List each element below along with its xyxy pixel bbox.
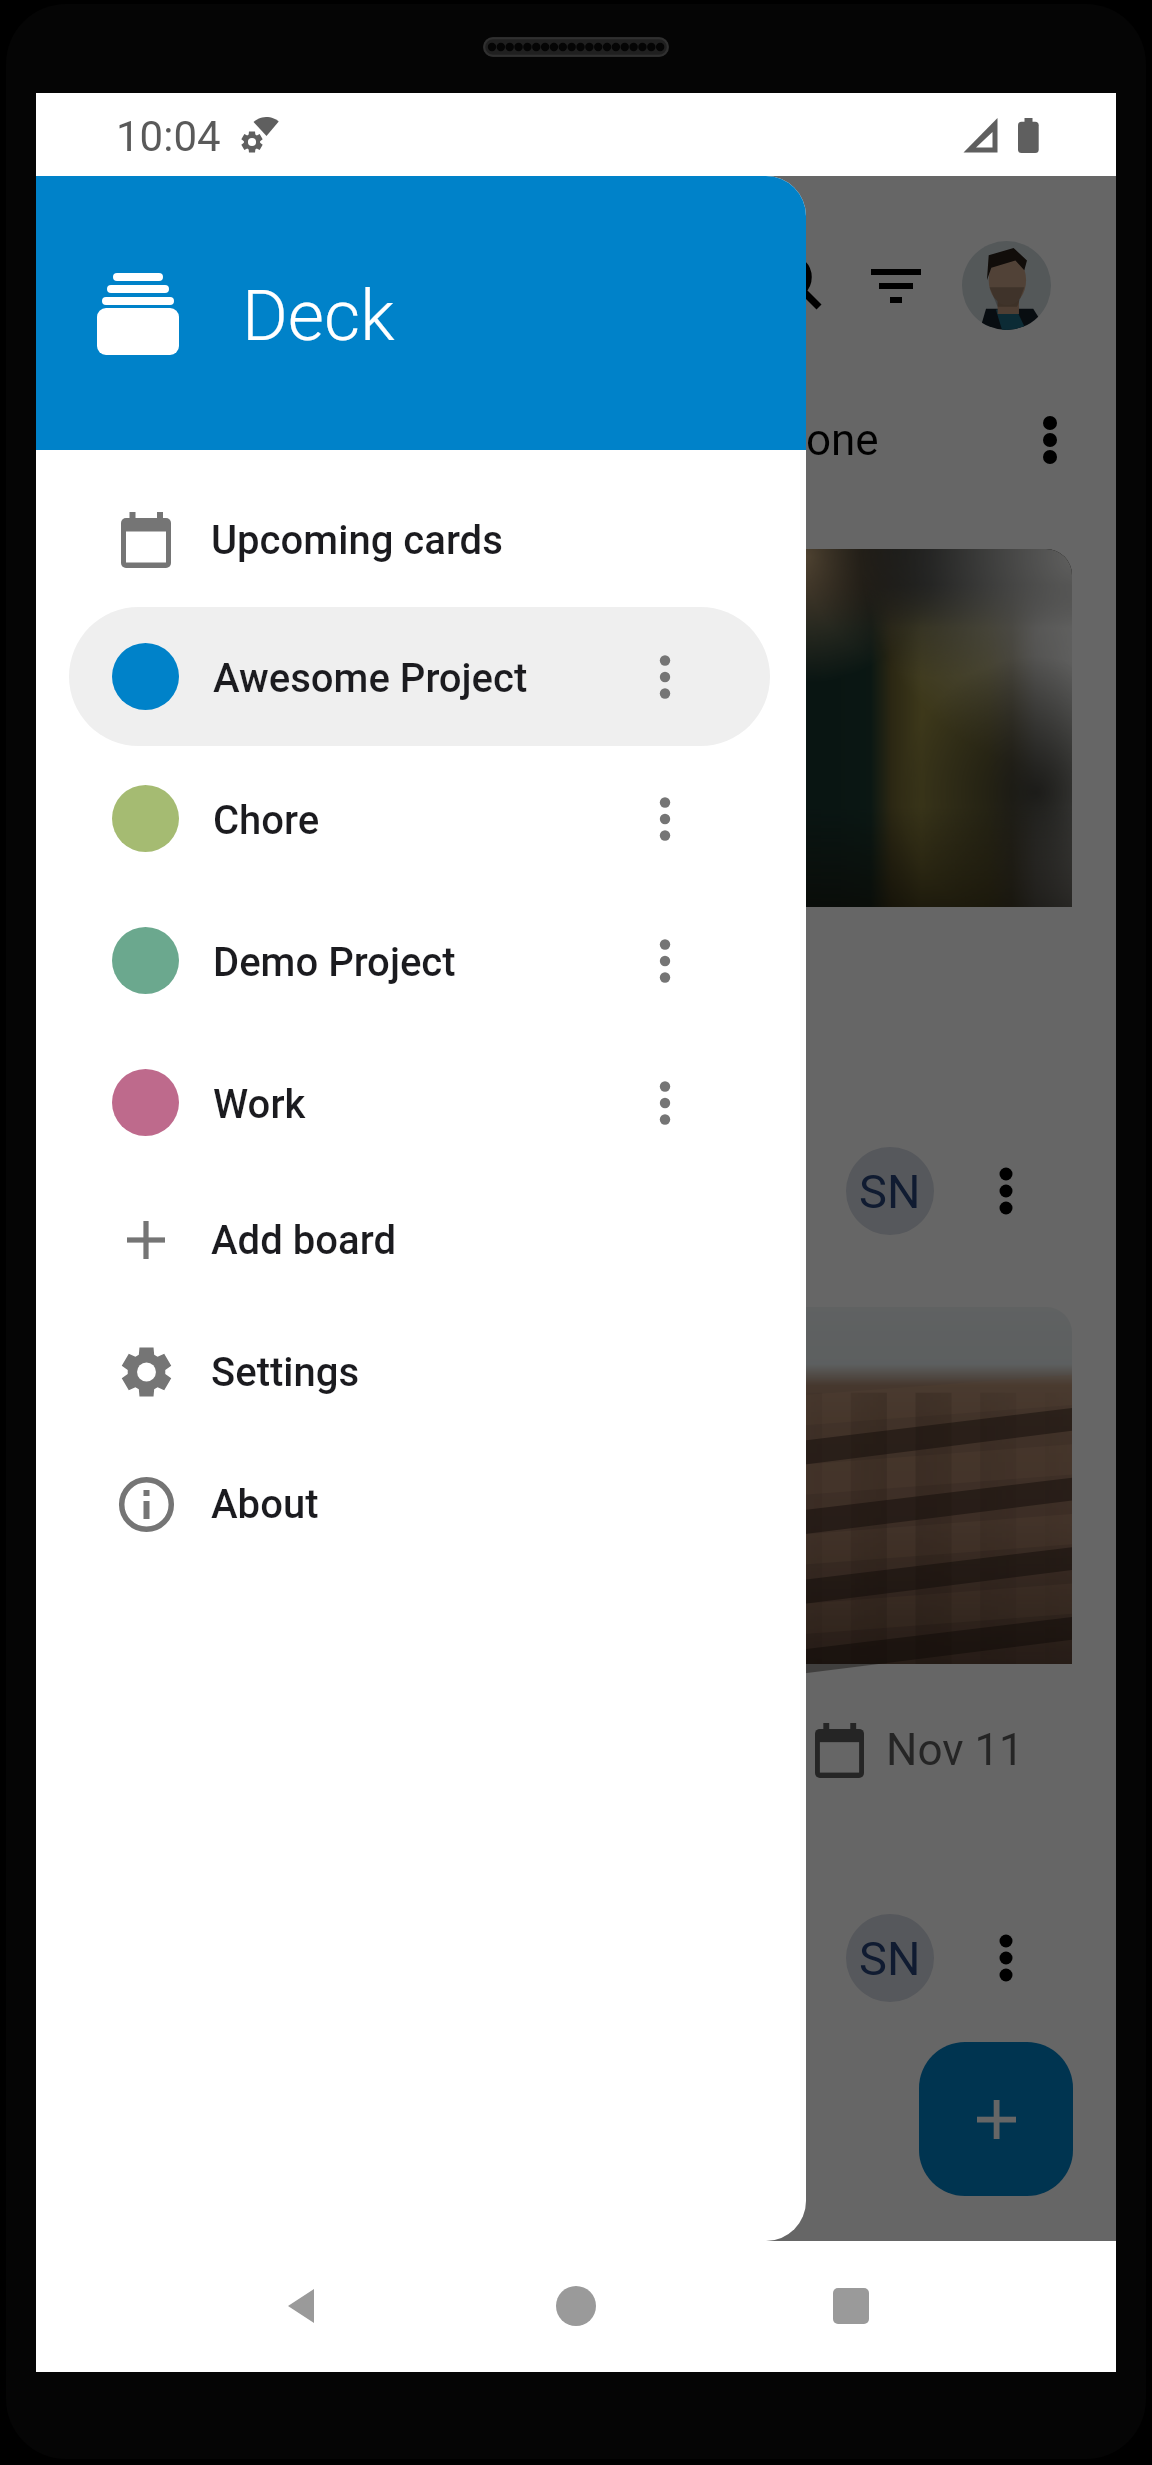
button[interactable]: Settings xyxy=(36,1306,806,1438)
staticText: Demo Project xyxy=(213,939,456,986)
button[interactable]: Back xyxy=(266,2271,336,2341)
staticText: Add board xyxy=(211,1217,397,1264)
button[interactable]: Chore xyxy=(69,749,770,888)
staticText: SN xyxy=(859,1164,921,1219)
staticText: Done xyxy=(777,414,879,466)
button[interactable]: SN xyxy=(771,549,1072,1261)
button[interactable]: Card options xyxy=(962,1914,1050,2002)
button[interactable]: Board options xyxy=(630,1033,770,1172)
staticText: Nov 11 xyxy=(886,1724,1024,1776)
staticText: SN xyxy=(859,1931,921,1986)
button[interactable]: Board options xyxy=(630,891,770,1030)
button[interactable]: Upcoming cards xyxy=(36,475,806,605)
button[interactable]: Board options xyxy=(630,607,770,746)
button[interactable]: Board options xyxy=(630,749,770,888)
button[interactable]: Done xyxy=(36,371,1116,481)
button[interactable]: Home xyxy=(541,2271,611,2341)
staticText: About xyxy=(211,1481,319,1528)
button[interactable]: Add board xyxy=(36,1174,806,1306)
button[interactable]: About xyxy=(36,1438,806,1570)
button[interactable]: Awesome Project xyxy=(69,607,770,746)
button[interactable]: Card options xyxy=(962,1147,1050,1235)
button[interactable]: Work xyxy=(69,1033,770,1172)
staticText: Work xyxy=(213,1081,306,1128)
button[interactable]: Stack options xyxy=(978,368,1122,478)
staticText: Upcoming cards xyxy=(211,517,503,564)
button[interactable]: Recent apps xyxy=(816,2271,886,2341)
button[interactable]: Filter xyxy=(824,217,968,361)
staticText: Chore xyxy=(213,797,320,844)
staticText: 10:04 xyxy=(116,112,221,161)
staticText: Deck xyxy=(242,275,395,357)
staticText: Settings xyxy=(211,1349,360,1396)
button[interactable]: Search xyxy=(723,211,867,355)
button[interactable]: Demo Project xyxy=(69,891,770,1030)
button[interactable]: Add card xyxy=(919,2042,1073,2196)
staticText: Awesome Project xyxy=(213,655,528,702)
button[interactable]: Account xyxy=(946,225,1066,345)
button[interactable]: Nov 11 xyxy=(771,1307,1072,2028)
